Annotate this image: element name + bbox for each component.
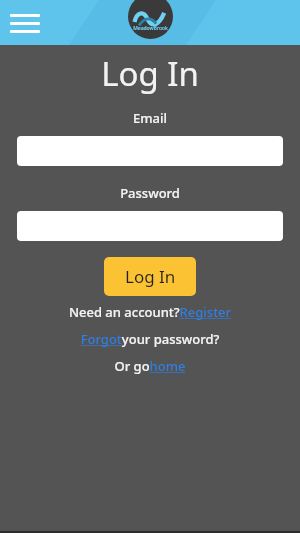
button[interactable]: MeadowBrook logo <box>122 0 179 39</box>
button[interactable]: Email input field <box>17 136 283 166</box>
staticText: Forgotyour password? <box>0 330 300 348</box>
button[interactable]: Go home <box>0 357 300 375</box>
staticText: Log In <box>0 51 300 96</box>
button[interactable]: Log In <box>104 257 196 296</box>
button[interactable]: Open navigation menu <box>7 8 43 38</box>
button[interactable]: Password input field <box>17 211 283 241</box>
staticText: Password <box>0 184 300 202</box>
staticText: Email <box>0 109 300 127</box>
staticText: Or gohome <box>0 357 300 375</box>
button[interactable]: Register for an account <box>0 303 300 321</box>
staticText: Log In <box>125 265 176 288</box>
staticText: Need an account?Register <box>0 303 300 321</box>
button[interactable]: Forgot your password <box>0 330 300 348</box>
staticText: MeadowBrook <box>133 25 168 32</box>
